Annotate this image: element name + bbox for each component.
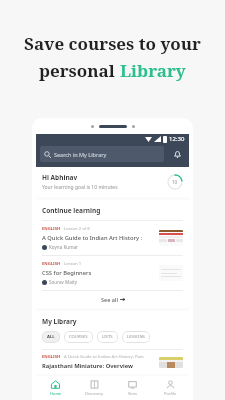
staticText: LISTS [102,334,113,340]
staticText: Koyna Kumar [49,244,78,250]
staticText: 12:30 [169,135,185,143]
button[interactable]: See all [42,291,183,308]
staticText: Home [50,391,62,396]
staticText: ENGLISH [42,354,61,360]
staticText: Rajasthani Miniature: Overview [42,362,133,370]
staticText: Lesson 1 [64,261,82,267]
staticText: CSS for Beginners [42,269,92,277]
staticText: 10 [172,179,178,185]
button[interactable]: Profile [151,376,189,400]
button[interactable]: LISTS [97,331,118,343]
staticText: Lesson 2 of 8 [64,226,90,232]
button[interactable]: ALL [42,331,60,343]
button[interactable]: ENGLISH [42,256,183,290]
staticText: A Quick Guide to Indian Art History: Pai… [64,354,144,360]
staticText: ALL [47,334,55,340]
staticText: Sourav Maity [49,279,77,285]
button[interactable]: ENGLISH [42,221,183,255]
staticText: Sims [128,391,137,396]
button[interactable]: COURSES [64,331,93,343]
button[interactable]: Discovery [75,376,113,400]
staticText: COURSES [69,334,88,340]
staticText: My Library [42,317,77,326]
staticText: Your learning goal is 10 minutes [42,184,118,191]
button[interactable]: Sims [113,376,151,400]
button[interactable]: Home [36,376,75,400]
button[interactable]: Notifications [169,146,185,162]
button[interactable]: ENGLISH [42,354,183,370]
staticText: Discovery [85,391,104,396]
staticText: ENGLISH [42,226,61,232]
button[interactable]: Search in My Library [40,146,164,162]
staticText: Continue learning [42,206,101,215]
staticText: Save courses to your [24,32,201,55]
staticText: Hi Abhinav [42,173,78,182]
staticText: A Quick Guide to Indian Art History : Pa… [42,234,154,242]
button[interactable]: Hi Abhinav [36,167,189,197]
button[interactable]: LESSONS [122,331,150,343]
staticText: See all [101,296,118,303]
staticText: Profile [164,391,177,396]
staticText: personal [39,59,120,82]
staticText: ENGLISH [42,261,61,267]
staticText: Search in My Library [54,151,107,158]
staticText: LESSONS [127,334,145,340]
staticText: Library [120,59,186,82]
